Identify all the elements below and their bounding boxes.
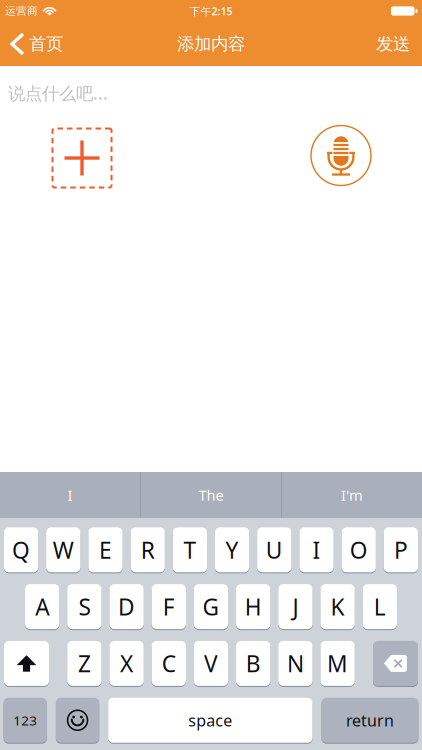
staticText: B <box>246 648 261 678</box>
staticText: N <box>287 648 304 678</box>
button[interactable]: W <box>46 527 80 572</box>
button[interactable]: Y <box>215 527 249 572</box>
button[interactable]: K <box>320 584 355 629</box>
button[interactable]: B <box>236 641 270 686</box>
button[interactable]: J <box>278 584 312 629</box>
button[interactable]: S <box>67 584 101 629</box>
button[interactable]: L <box>363 584 397 629</box>
button[interactable]: return <box>321 698 418 743</box>
button[interactable]: Shift <box>4 641 49 686</box>
button[interactable]: O <box>341 527 376 572</box>
staticText: F <box>163 592 175 622</box>
button[interactable]: M <box>320 641 355 686</box>
staticText: J <box>292 592 298 622</box>
staticText: K <box>331 592 345 622</box>
button[interactable]: T <box>173 527 207 572</box>
staticText: 运营商 <box>5 4 38 17</box>
button[interactable]: V <box>194 641 228 686</box>
button[interactable]: G <box>194 584 228 629</box>
staticText: O <box>350 535 368 565</box>
staticText: R <box>141 535 155 565</box>
staticText: S <box>78 592 90 622</box>
staticText: E <box>99 535 112 565</box>
button[interactable]: F <box>152 584 186 629</box>
button[interactable]: 发送 <box>376 33 422 55</box>
staticText: Q <box>12 535 30 565</box>
staticText: I <box>312 535 320 565</box>
staticText: A <box>35 592 49 622</box>
button[interactable]: space <box>108 698 312 743</box>
staticText: I'm <box>341 485 363 505</box>
button[interactable]: D <box>109 584 144 629</box>
button[interactable]: 添加图片 <box>52 128 111 187</box>
button[interactable]: 首页 <box>0 33 63 55</box>
staticText: G <box>202 592 219 622</box>
staticText: I <box>67 485 72 505</box>
staticText: T <box>183 535 196 565</box>
staticText: C <box>162 648 176 678</box>
staticText: space <box>188 710 232 731</box>
staticText: return <box>346 710 394 731</box>
staticText: P <box>394 535 408 565</box>
button[interactable]: I'm <box>282 472 422 518</box>
button[interactable]: I <box>299 527 334 572</box>
staticText: L <box>374 592 386 622</box>
button[interactable]: N <box>278 641 312 686</box>
button[interactable]: Delete <box>373 641 418 686</box>
button[interactable]: H <box>236 584 270 629</box>
staticText: U <box>266 535 283 565</box>
button[interactable]: E <box>88 527 123 572</box>
button[interactable]: X <box>109 641 144 686</box>
staticText: H <box>245 592 262 622</box>
button[interactable]: U <box>257 527 291 572</box>
button[interactable]: The <box>141 472 281 518</box>
staticText: 添加内容 <box>177 33 245 55</box>
staticText: 123 <box>13 711 37 729</box>
staticText: V <box>204 648 218 678</box>
button[interactable]: 表情 <box>56 698 99 743</box>
staticText: D <box>118 592 135 622</box>
staticText: The <box>198 485 223 505</box>
staticText: 发送 <box>376 33 410 55</box>
staticText: Y <box>226 535 239 565</box>
button[interactable]: A <box>25 584 59 629</box>
button[interactable]: C <box>152 641 186 686</box>
staticText: 说点什么吧... <box>8 81 108 104</box>
staticText: 下午2:15 <box>189 4 232 18</box>
button[interactable]: 语音输入 <box>311 128 371 188</box>
button[interactable]: Q <box>4 527 38 572</box>
staticText: Z <box>78 648 91 678</box>
staticText: M <box>327 648 348 678</box>
staticText: W <box>53 535 74 565</box>
staticText: X <box>120 648 133 678</box>
button[interactable]: P <box>384 527 418 572</box>
button[interactable]: I <box>0 472 140 518</box>
button[interactable]: 123 <box>4 698 47 743</box>
button[interactable]: Z <box>67 641 101 686</box>
button[interactable]: R <box>130 527 165 572</box>
staticText: 首页 <box>29 33 63 55</box>
